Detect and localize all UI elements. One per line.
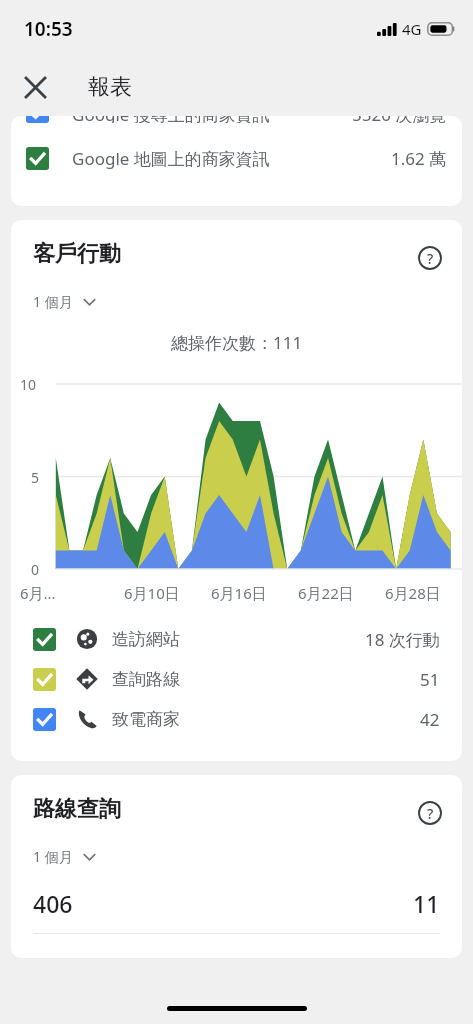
staticText: 10:53 [24, 16, 73, 42]
staticText: ? [427, 249, 434, 268]
staticText: 4G [402, 19, 422, 39]
staticText: Google 地圖上的商家資訊 [72, 147, 270, 170]
staticText: 查詢路線 [112, 669, 180, 690]
staticText: 18 次行動 [365, 628, 440, 651]
button[interactable]: 查詢路線 [11, 659, 462, 699]
staticText: 報表 [88, 73, 132, 101]
staticText: 0 [31, 560, 40, 579]
staticText: 總操作次數：111 [171, 331, 303, 354]
button[interactable]: Help [412, 240, 448, 276]
staticText: Google 搜尋上的商家資訊 [72, 116, 270, 123]
button[interactable]: 造訪網站 [11, 619, 462, 659]
button[interactable]: 1 個月 [33, 847, 96, 866]
button[interactable]: 致電商家 [11, 699, 462, 739]
staticText: 42 [420, 708, 440, 731]
staticText: 5 [31, 468, 40, 487]
staticText: 6月22日 [298, 583, 354, 603]
staticText: ? [427, 804, 434, 823]
staticText: 1 個月 [33, 292, 73, 311]
button[interactable]: Close [13, 65, 57, 109]
staticText: 客戶行動 [33, 240, 121, 268]
staticText: 6月28日 [385, 583, 441, 603]
staticText: 路線查詢 [33, 795, 121, 823]
staticText: 5520 次瀏覽 [352, 116, 447, 123]
staticText: 6月10日 [124, 583, 180, 603]
staticText: 51 [420, 668, 440, 691]
staticText: 11 [413, 888, 440, 919]
button[interactable]: Help [412, 795, 448, 831]
staticText: 1 個月 [33, 847, 73, 866]
button[interactable]: 1 個月 [33, 292, 96, 311]
staticText: 6月... [20, 583, 56, 603]
staticText: 1.62 萬 [391, 147, 447, 170]
staticText: 406 [33, 888, 73, 919]
staticText: 致電商家 [112, 709, 180, 730]
button[interactable]: Google 地圖上的商家資訊 [11, 136, 462, 180]
staticText: 10 [20, 375, 37, 394]
staticText: 6月16日 [211, 583, 267, 603]
staticText: 造訪網站 [112, 629, 180, 650]
